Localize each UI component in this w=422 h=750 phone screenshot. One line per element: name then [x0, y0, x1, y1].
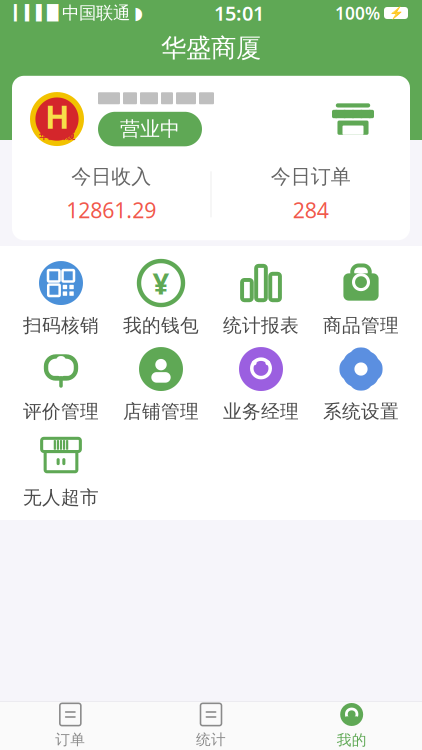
button[interactable]: 我的 [281, 702, 422, 750]
staticText: 评价管理 [23, 400, 99, 423]
staticText: ◗ [134, 3, 143, 23]
button[interactable]: 店铺管理 [111, 342, 211, 428]
staticText: 华盛商厦 [39, 130, 75, 142]
staticText: 业务经理 [223, 400, 299, 423]
button[interactable]: 营业中 [98, 112, 202, 146]
staticText: 284 [293, 196, 329, 224]
staticText: 店铺管理 [123, 400, 199, 423]
staticText: 系统设置 [323, 400, 399, 423]
staticText: 华盛商厦 [161, 32, 261, 63]
staticText: 12861.29 [66, 196, 156, 224]
staticText: 统计 [196, 731, 226, 749]
staticText: ¥ [152, 264, 169, 303]
staticText: 营业中 [120, 117, 180, 141]
button[interactable]: 扫码核销 [11, 256, 111, 342]
button[interactable]: 统计报表 [211, 256, 311, 342]
button[interactable]: 评价管理 [11, 342, 111, 428]
staticText: 订单 [55, 731, 85, 749]
button[interactable]: 无人超市 [11, 428, 111, 514]
staticText: H [45, 95, 69, 138]
staticText: 中国联通 [62, 2, 130, 24]
button[interactable]: 统计 [141, 702, 281, 750]
button[interactable]: 订单 [0, 702, 141, 750]
staticText: 无人超市 [23, 486, 99, 509]
staticText: 扫码核销 [23, 314, 99, 337]
staticText: 我的 [337, 731, 367, 749]
staticText: 100% [335, 1, 380, 24]
staticText: 商品管理 [323, 314, 399, 337]
staticText: 今日收入 [71, 164, 151, 189]
staticText: 今日订单 [271, 164, 351, 189]
staticText: 15:01 [214, 0, 264, 26]
staticText: 我的钱包 [123, 314, 199, 337]
staticText: ⚡ [388, 6, 403, 20]
button[interactable]: 业务经理 [211, 342, 311, 428]
staticText: 统计报表 [223, 314, 299, 337]
staticText: ▎▍▌█ [14, 5, 58, 21]
button[interactable]: ¥ [111, 256, 211, 342]
button[interactable]: 商品管理 [311, 256, 411, 342]
button[interactable]: 系统设置 [311, 342, 411, 428]
